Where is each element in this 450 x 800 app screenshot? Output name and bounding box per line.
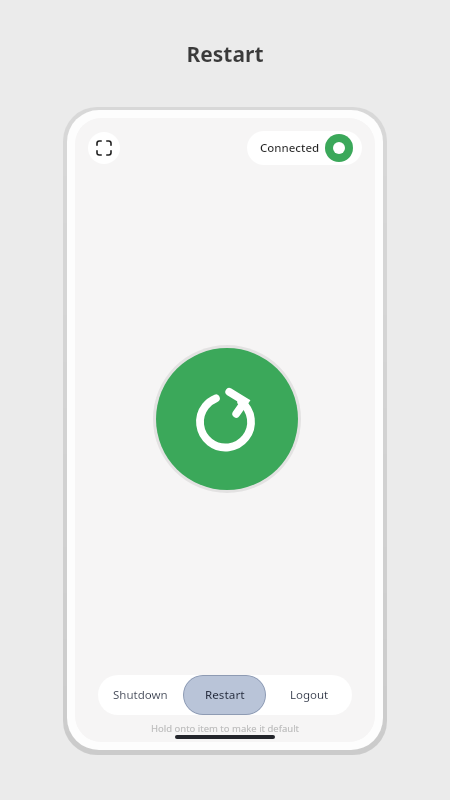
button[interactable]: Connected	[247, 131, 362, 165]
button[interactable]: Shutdown	[99, 675, 181, 715]
staticText: Shutdown	[113, 687, 168, 703]
staticText: Restart	[205, 687, 245, 703]
staticText: Hold onto item to make it default	[75, 722, 375, 735]
staticText: Restart	[0, 40, 450, 69]
button[interactable]: Logout	[268, 675, 351, 715]
button[interactable]: Restart	[183, 675, 266, 715]
button[interactable]: Restart device	[156, 348, 298, 490]
staticText: Connected	[260, 140, 320, 156]
button[interactable]: Scan	[88, 132, 120, 164]
staticText: Logout	[290, 687, 329, 703]
